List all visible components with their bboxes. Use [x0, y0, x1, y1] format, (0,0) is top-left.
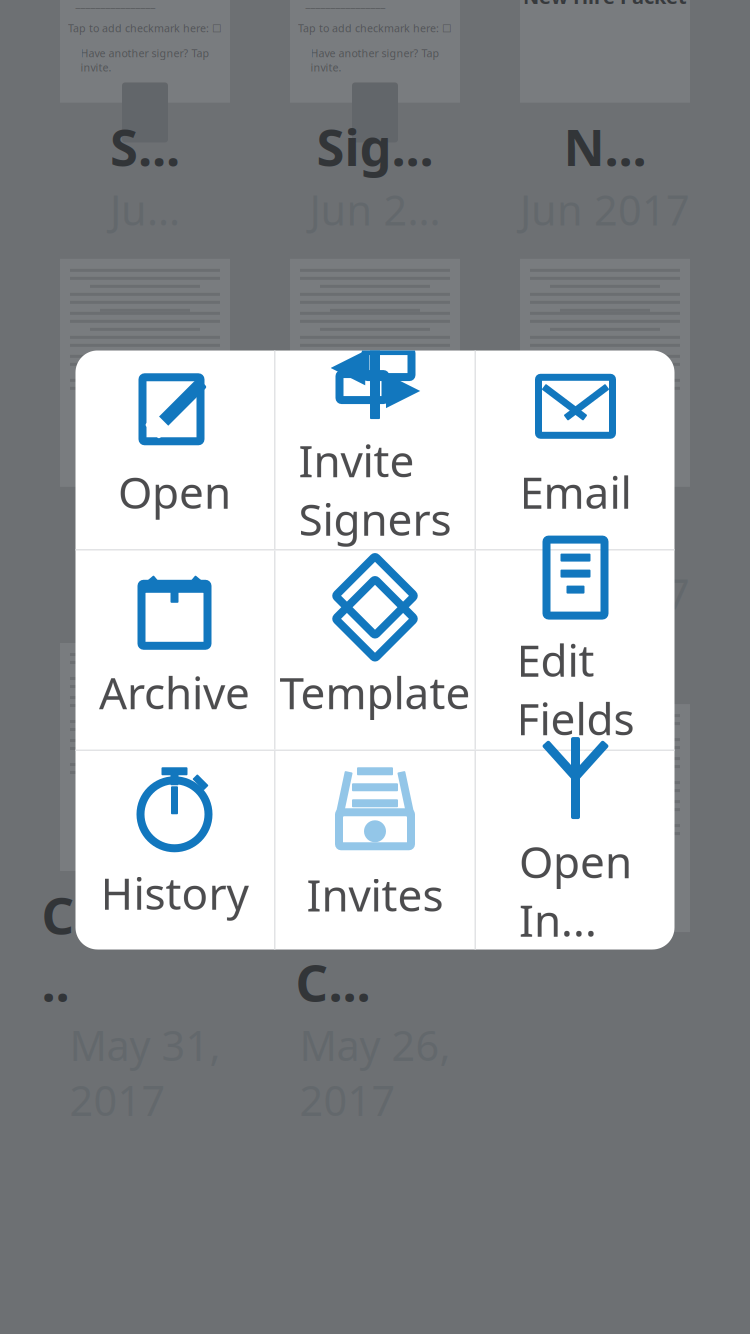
- staticText: Template: [279, 663, 470, 721]
- staticText: Ju...: [110, 566, 180, 621]
- button[interactable]: ◀: [275, 350, 474, 549]
- button[interactable]: Te...: [499, 259, 711, 621]
- staticText: Archive: [99, 663, 250, 721]
- staticText: New Hire Packet: [523, 0, 687, 9]
- staticText: Do...: [319, 497, 430, 564]
- button[interactable]: Gabby C...: [269, 643, 481, 1127]
- button[interactable]: [476, 350, 675, 549]
- button[interactable]: Archive: [75, 550, 274, 749]
- staticText: Gabby C...: [295, 881, 454, 1016]
- staticText: Tap to add checkmark here: ☐: [68, 21, 222, 35]
- button[interactable]: SignNow: [269, 0, 481, 237]
- staticText: Te...: [556, 497, 654, 564]
- button[interactable]: [499, 704, 711, 1066]
- staticText: ▶: [385, 361, 420, 413]
- staticText: N...: [563, 113, 646, 180]
- staticText: Have another signer? Tap invite.: [310, 46, 439, 74]
- staticText: Ju...: [340, 566, 410, 621]
- button[interactable]: Do...: [269, 259, 481, 621]
- staticText: Have another signer? Tap invite.: [80, 46, 209, 74]
- staticText: Open In...: [519, 832, 632, 949]
- staticText: Invites: [306, 865, 443, 924]
- staticText: ◀: [330, 338, 365, 390]
- staticText: Catalan...: [41, 881, 248, 1016]
- button[interactable]: History: [75, 751, 274, 950]
- button[interactable]: Open In...: [476, 751, 675, 950]
- button[interactable]: Edit Fields: [476, 550, 675, 749]
- staticText: May 31, 2017: [69, 1018, 220, 1127]
- staticText: Invite Signers: [298, 431, 451, 548]
- button[interactable]: ◤: [499, 0, 711, 237]
- staticText: Sig...: [316, 113, 433, 180]
- staticText: History: [100, 864, 248, 922]
- staticText: Tap to add some text here : ____________…: [75, 0, 214, 10]
- staticText: Jun 2017: [520, 182, 690, 237]
- staticText: Em...: [85, 497, 204, 564]
- staticText: Jun 2017: [520, 566, 690, 621]
- button[interactable]: SignNow: [39, 0, 251, 237]
- button[interactable]: Catalan...: [39, 643, 251, 1127]
- button[interactable]: Invites: [275, 751, 474, 950]
- staticText: May 26, 2017: [299, 1018, 450, 1127]
- button[interactable]: Em...: [39, 259, 251, 621]
- staticText: Open: [118, 463, 231, 521]
- button[interactable]: Template: [275, 550, 474, 749]
- staticText: S...: [110, 113, 180, 180]
- staticText: Edit Fields: [516, 631, 634, 747]
- staticText: Tap to add some text here : ____________…: [305, 0, 444, 10]
- staticText: Tap to add checkmark here: ☐: [298, 21, 452, 35]
- staticText: Email: [519, 463, 631, 521]
- button[interactable]: Open: [75, 350, 274, 549]
